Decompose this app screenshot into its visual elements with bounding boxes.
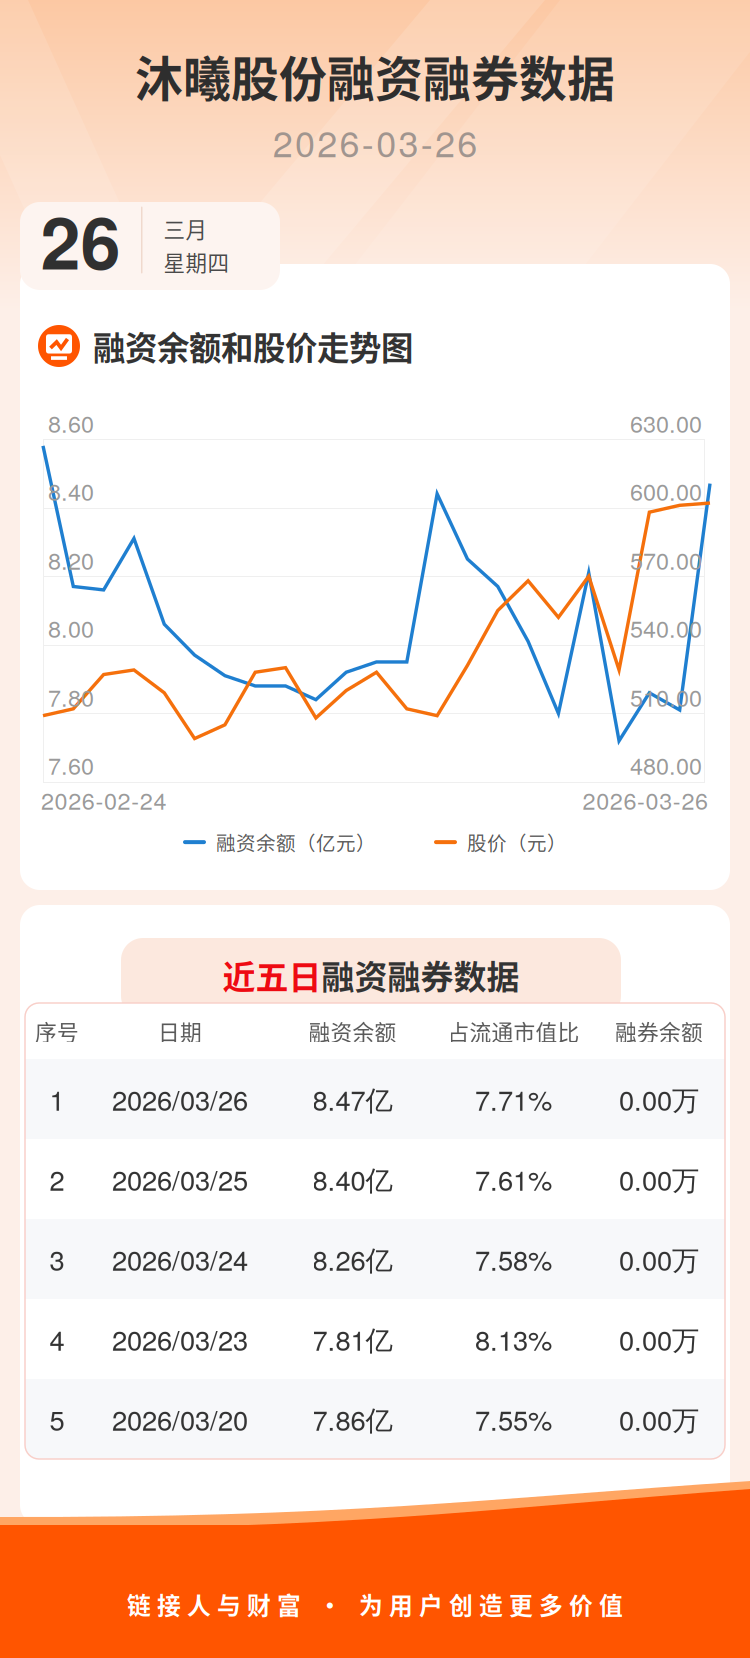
staticText: 三月 bbox=[163, 213, 207, 244]
staticText: 融资余额 bbox=[308, 1015, 396, 1047]
staticText: 26 bbox=[40, 188, 120, 291]
staticText: 2026-03-26 bbox=[583, 783, 708, 816]
staticText: 2026/03/23 bbox=[112, 1319, 248, 1359]
staticText: 2026-03-26 bbox=[273, 116, 477, 168]
staticText: 沐曦股份融资融券数据 bbox=[135, 41, 615, 110]
staticText: 2026/03/24 bbox=[112, 1239, 248, 1279]
staticText: 8.00 bbox=[48, 611, 94, 644]
staticText: 630.00 bbox=[630, 406, 702, 439]
staticText: 融资余额和股价走势图 bbox=[93, 322, 413, 369]
staticText: 8.47亿 bbox=[312, 1079, 392, 1119]
staticText: 7.81亿 bbox=[312, 1319, 392, 1359]
staticText: 7.60 bbox=[48, 748, 94, 781]
staticText: 0.00万 bbox=[619, 1319, 699, 1359]
staticText: 7.86亿 bbox=[312, 1399, 392, 1439]
staticText: 1 bbox=[49, 1079, 64, 1119]
staticText: 2 bbox=[49, 1159, 64, 1199]
staticText: 融资余额（亿元） bbox=[216, 828, 376, 856]
staticText: 7.71% bbox=[475, 1079, 552, 1119]
staticText: 5 bbox=[49, 1399, 64, 1439]
staticText: 8.13% bbox=[475, 1319, 552, 1359]
staticText: 3 bbox=[49, 1239, 64, 1279]
staticText: 0.00万 bbox=[619, 1239, 699, 1279]
staticText: 2026/03/26 bbox=[112, 1079, 248, 1119]
staticText: 近五日 bbox=[222, 951, 321, 999]
staticText: 0.00万 bbox=[619, 1079, 699, 1119]
staticText: 融资融券数据 bbox=[321, 951, 519, 999]
staticText: 510.00 bbox=[630, 680, 702, 713]
staticText: 8.20 bbox=[48, 543, 94, 576]
staticText: 2026/03/20 bbox=[112, 1399, 248, 1439]
staticText: 星期四 bbox=[163, 246, 229, 277]
staticText: 4 bbox=[49, 1319, 64, 1359]
staticText: 540.00 bbox=[630, 611, 702, 644]
staticText: 链接人与财富 · 为用户创造更多价值 bbox=[127, 1587, 623, 1621]
staticText: 2026/03/25 bbox=[112, 1159, 248, 1199]
staticText: 融券余额 bbox=[615, 1015, 703, 1047]
staticText: 0.00万 bbox=[619, 1159, 699, 1199]
staticText: 占流通市值比 bbox=[447, 1015, 579, 1047]
staticText: 8.40 bbox=[48, 474, 94, 507]
staticText: 7.80 bbox=[48, 680, 94, 713]
staticText: 2026-02-24 bbox=[41, 783, 166, 816]
staticText: 7.61% bbox=[475, 1159, 552, 1199]
staticText: 8.60 bbox=[48, 406, 94, 439]
staticText: 7.58% bbox=[475, 1239, 552, 1279]
staticText: 股价（元） bbox=[467, 828, 567, 856]
staticText: 日期 bbox=[158, 1015, 202, 1047]
staticText: 8.40亿 bbox=[312, 1159, 392, 1199]
staticText: 480.00 bbox=[630, 748, 702, 781]
staticText: 0.00万 bbox=[619, 1399, 699, 1439]
staticText: 7.55% bbox=[475, 1399, 552, 1439]
staticText: 600.00 bbox=[630, 474, 702, 507]
staticText: 8.26亿 bbox=[312, 1239, 392, 1279]
staticText: 序号 bbox=[35, 1015, 79, 1047]
staticText: 570.00 bbox=[630, 543, 702, 576]
